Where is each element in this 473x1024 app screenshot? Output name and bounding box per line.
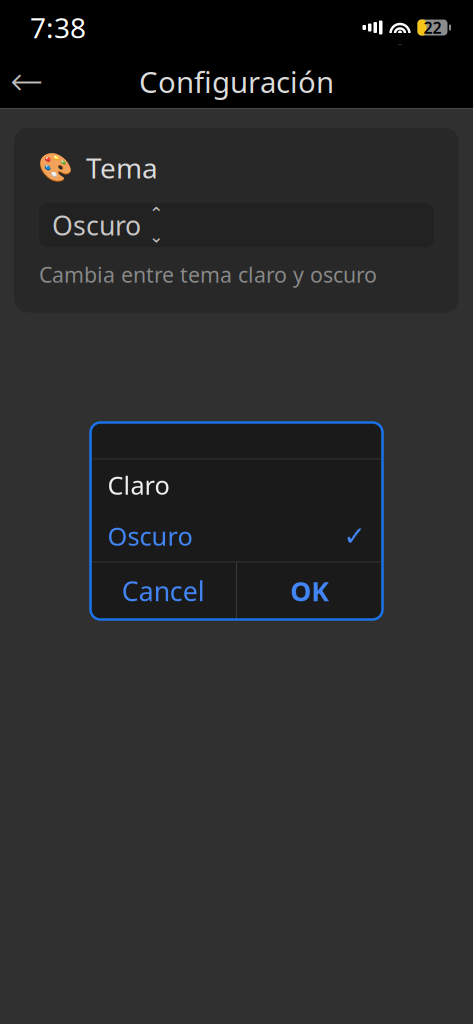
staticText: 7:38	[30, 9, 86, 46]
staticText: Cambia entre tema claro y oscuro	[39, 260, 377, 288]
staticText: 22	[423, 17, 441, 38]
staticText: Claro	[107, 468, 169, 502]
button[interactable]: OK	[237, 562, 382, 619]
staticText: ⌄	[149, 227, 164, 246]
button[interactable]: Oscuro	[39, 203, 434, 247]
button[interactable]: Oscuro	[90, 510, 382, 561]
staticText: Cancel	[122, 573, 205, 609]
staticText: ✓	[343, 521, 365, 551]
staticText: Tema	[86, 149, 158, 186]
staticText: Oscuro	[52, 207, 141, 243]
button[interactable]: Back	[0, 55, 54, 108]
staticText: ⌃	[149, 204, 164, 224]
button[interactable]: Cancel	[90, 562, 236, 619]
staticText: Oscuro	[107, 519, 192, 553]
staticText: ←	[10, 59, 44, 104]
staticText: Configuración	[139, 62, 334, 101]
staticText: 🎨	[38, 152, 73, 184]
button[interactable]: Claro	[90, 459, 382, 510]
staticText: OK	[290, 573, 329, 609]
